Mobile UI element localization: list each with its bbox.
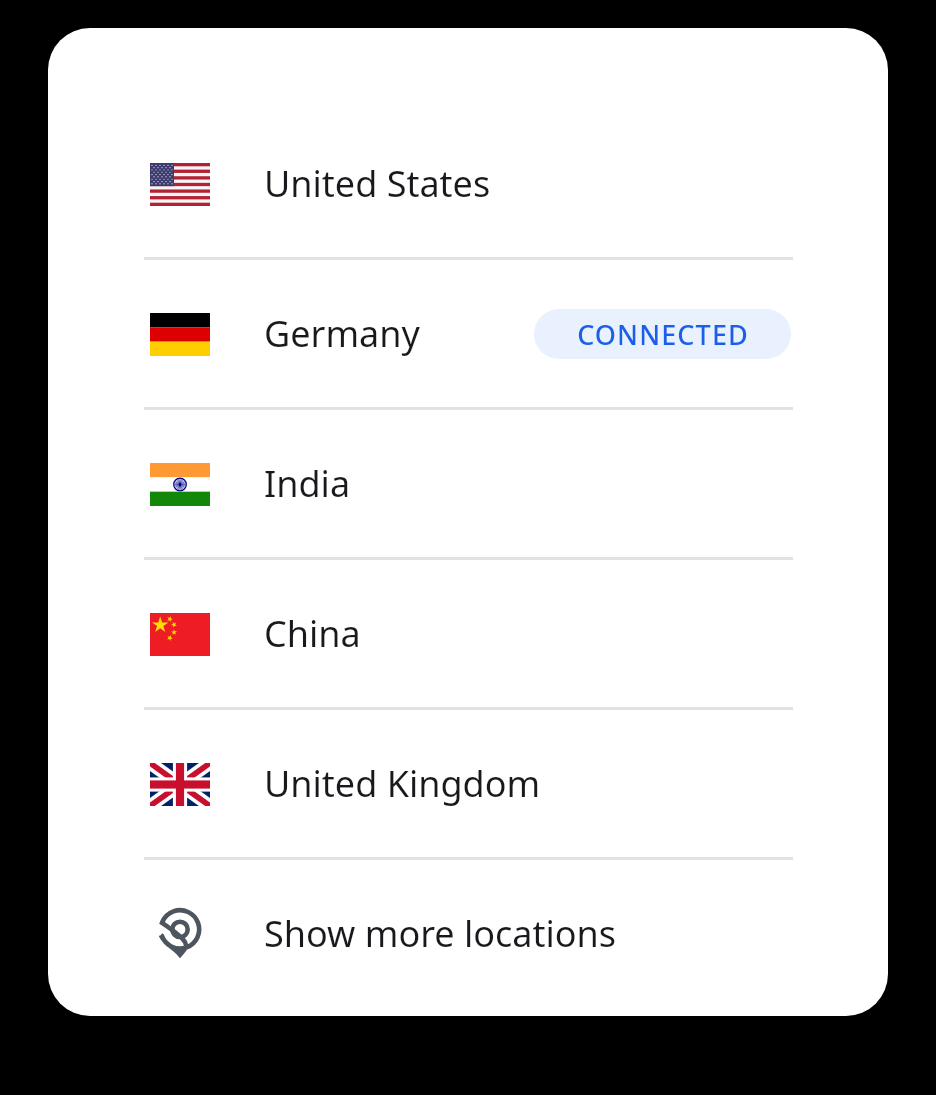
button[interactable]: United States xyxy=(48,110,888,257)
staticText: China xyxy=(264,609,361,658)
staticText: Show more locations xyxy=(264,909,617,958)
staticText: Germany xyxy=(264,309,420,358)
button[interactable]: China xyxy=(48,560,888,707)
staticText: CONNECTED xyxy=(577,316,749,353)
staticText: India xyxy=(264,459,351,508)
button[interactable]: Location xyxy=(48,860,888,1007)
staticText: United States xyxy=(264,159,491,208)
other: Location xyxy=(153,911,207,957)
button[interactable]: India xyxy=(48,410,888,557)
button[interactable]: Germany xyxy=(48,260,888,407)
staticText: United Kingdom xyxy=(264,759,541,808)
button[interactable]: United Kingdom xyxy=(48,710,888,857)
button[interactable]: CONNECTED xyxy=(534,309,791,359)
